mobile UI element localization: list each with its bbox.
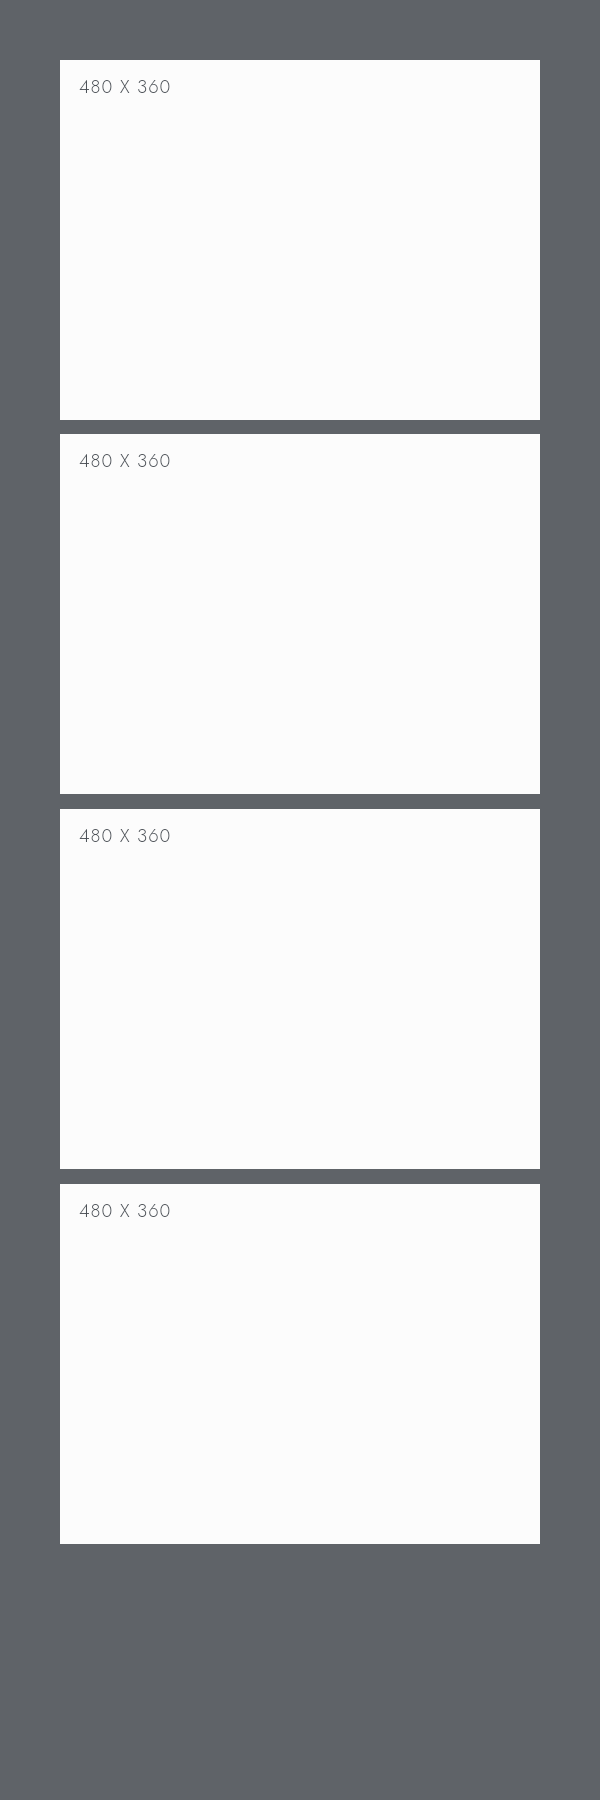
- button[interactable]: Image placeholder, 480 by 360: [60, 809, 540, 1169]
- staticText: 480 X 360: [79, 822, 172, 849]
- staticText: 480 X 360: [79, 73, 172, 100]
- button[interactable]: Image placeholder, 480 by 360: [60, 60, 540, 420]
- button[interactable]: Image placeholder, 480 by 360: [60, 434, 540, 794]
- button[interactable]: Image placeholder, 480 by 360: [60, 1184, 540, 1544]
- staticText: 480 X 360: [79, 1197, 172, 1224]
- staticText: 480 X 360: [79, 447, 172, 474]
